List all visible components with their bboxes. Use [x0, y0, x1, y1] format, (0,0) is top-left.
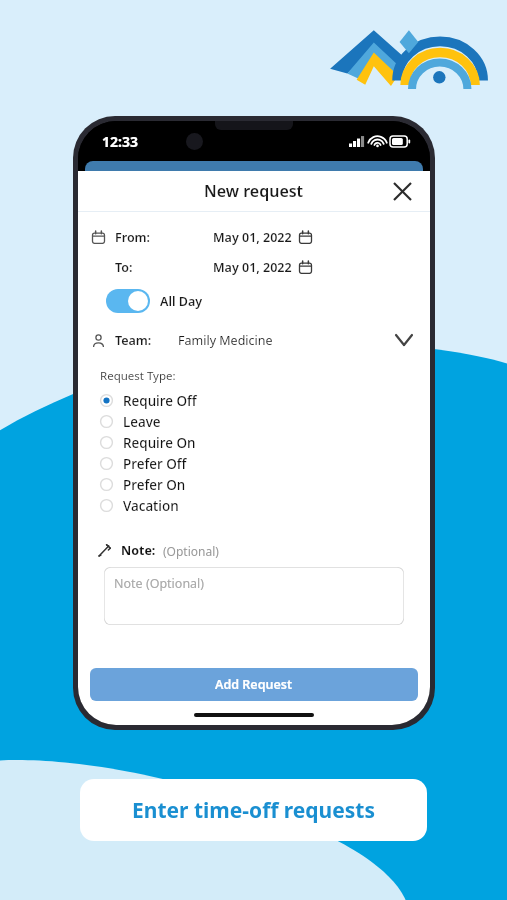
button[interactable]: From:	[78, 224, 430, 250]
staticText: To:	[115, 259, 133, 276]
staticText: Prefer On	[123, 476, 186, 494]
button[interactable]: Require On	[100, 432, 430, 453]
staticText: May 01, 2022	[213, 229, 292, 246]
button[interactable]: Close	[386, 175, 418, 207]
button[interactable]: Note (Optional)	[104, 567, 404, 625]
staticText: Team:	[115, 332, 152, 349]
staticText: (Optional)	[163, 543, 219, 559]
staticText: Note:	[121, 542, 156, 559]
staticText: Leave	[123, 413, 161, 431]
staticText: Prefer Off	[123, 455, 187, 473]
staticText: Family Medicine	[178, 332, 273, 349]
staticText: 12:33	[102, 132, 138, 151]
button[interactable]: To:	[78, 254, 430, 280]
button[interactable]: Leave	[100, 411, 430, 432]
staticText: May 01, 2022	[213, 259, 292, 276]
staticText: All Day	[160, 293, 203, 310]
button[interactable]: Add Request	[90, 668, 418, 701]
staticText: Enter time-off requests	[132, 796, 375, 825]
button[interactable]: Team:	[78, 326, 430, 354]
button[interactable]: Prefer On	[100, 474, 430, 495]
button[interactable]: Enter time-off requests	[80, 779, 427, 841]
button[interactable]: Vacation	[100, 495, 430, 516]
staticText: Require Off	[123, 392, 197, 410]
staticText: Vacation	[123, 497, 179, 515]
button[interactable]: Prefer Off	[100, 453, 430, 474]
staticText: Require On	[123, 434, 196, 452]
button[interactable]: Require Off	[100, 390, 430, 411]
staticText: Add Request	[215, 676, 293, 693]
staticText: Note (Optional)	[114, 575, 205, 592]
button[interactable]: All Day	[106, 286, 203, 316]
staticText: From:	[115, 229, 151, 246]
staticText: Request Type:	[100, 368, 176, 384]
staticText: New request	[204, 180, 304, 202]
